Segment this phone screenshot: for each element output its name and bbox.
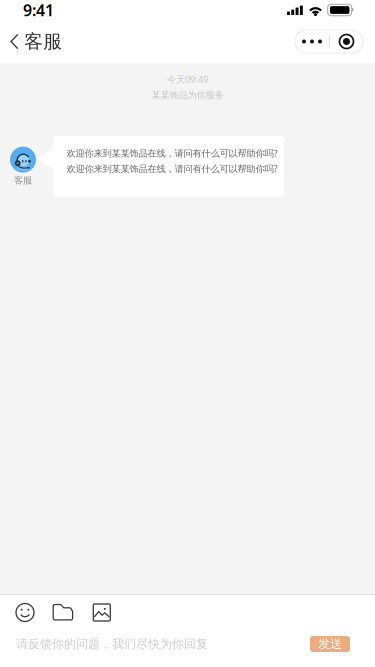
staticText: 9:41 (23, 0, 54, 21)
button[interactable]: 发送 (310, 636, 350, 652)
staticText: 请反馈你的问题，我们尽快为你回复 (16, 637, 208, 651)
staticText: 某某饰品为你服务 (151, 89, 223, 101)
staticText: 欢迎你来到某某饰品在线，请问有什么可以帮助你吗? (66, 147, 277, 159)
button[interactable]: Emoji (6, 599, 44, 626)
staticText: 发送 (318, 637, 342, 651)
button[interactable]: Files (44, 599, 83, 626)
staticText: 欢迎你来到某某饰品在线，请问有什么可以帮助你吗? (66, 162, 277, 175)
button[interactable]: Photos (83, 599, 121, 626)
staticText: 客服 (24, 30, 62, 53)
button[interactable]: 客服 (0, 20, 72, 63)
staticText: 今天09:49 (167, 73, 208, 85)
button[interactable]: More options (295, 30, 375, 53)
staticText: 客服 (14, 175, 32, 186)
